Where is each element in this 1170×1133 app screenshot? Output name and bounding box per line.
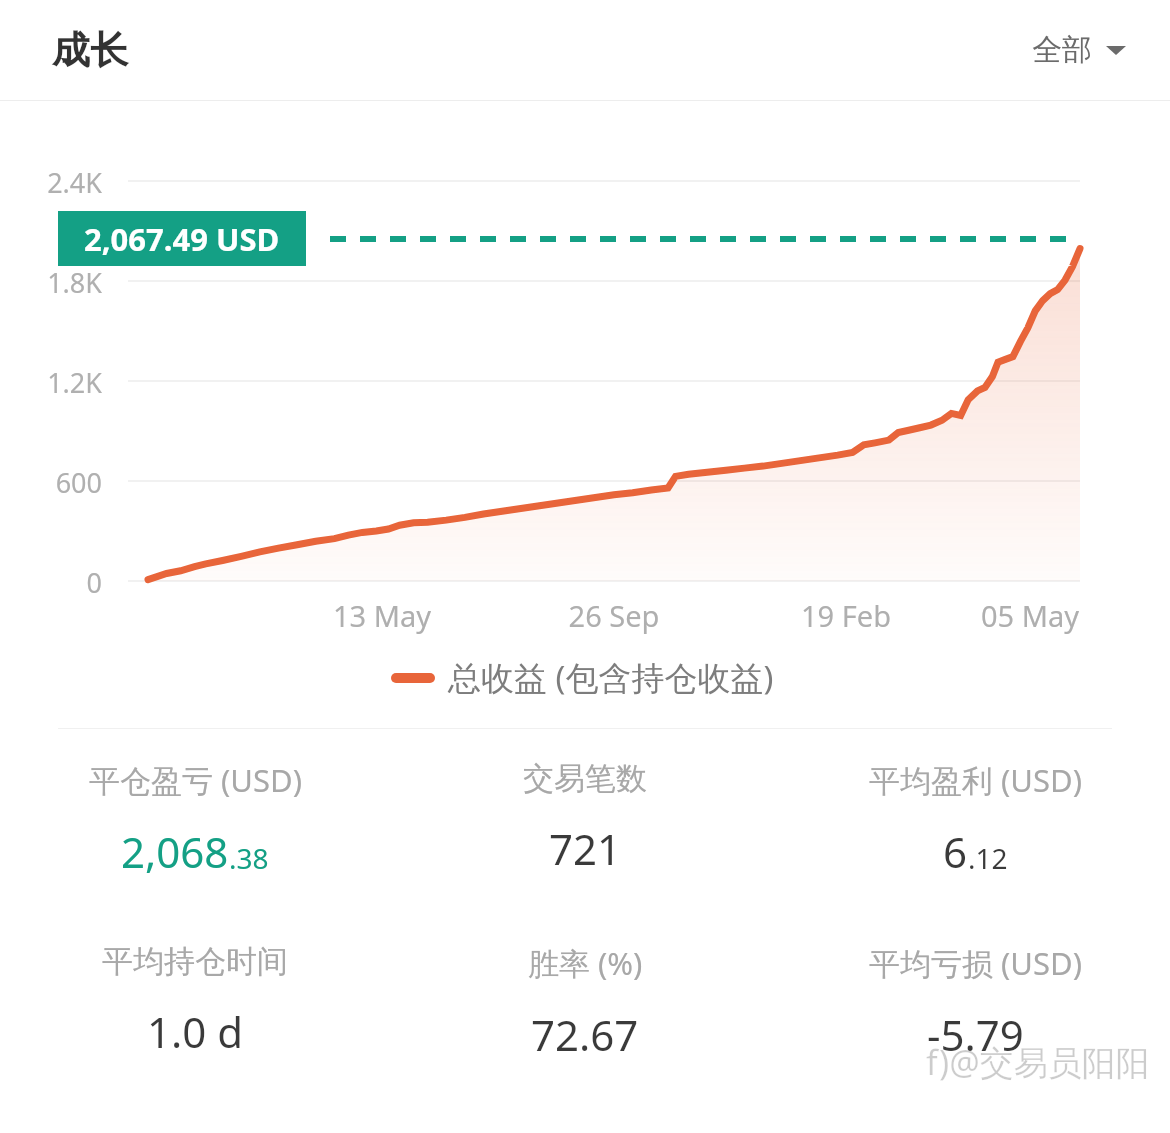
staticText: 成长 — [52, 26, 128, 74]
button[interactable]: 2,067.49 USD — [58, 211, 306, 266]
staticText: 1.0 d — [147, 1003, 244, 1060]
staticText: 72.67 — [531, 1006, 639, 1063]
staticText: 平均盈利 (USD) — [869, 759, 1082, 801]
staticText: .12 — [968, 839, 1008, 877]
button[interactable]: 平仓盈亏 (USD) — [0, 759, 390, 880]
staticText: 胜率 (%) — [528, 942, 643, 984]
staticText: .38 — [229, 839, 269, 877]
staticText: 19 Feb — [766, 596, 926, 635]
staticText: 平均持仓时间 — [102, 942, 288, 981]
staticText: 平均亏损 (USD) — [869, 942, 1082, 984]
staticText: 1.8K — [0, 264, 102, 301]
staticText: 交易笔数 — [523, 759, 647, 798]
button[interactable]: 交易笔数 — [390, 759, 780, 877]
staticText: 2.4K — [0, 164, 102, 201]
button[interactable]: 胜率 (%) — [390, 942, 780, 1063]
staticText: 0 — [0, 564, 102, 601]
staticText: 6 — [943, 823, 968, 880]
staticText: 2,068 — [121, 823, 229, 880]
staticText: 13 May — [302, 596, 462, 635]
staticText: 平仓盈亏 (USD) — [89, 759, 302, 801]
button[interactable]: 全部 — [1024, 23, 1134, 77]
staticText: 721 — [549, 820, 622, 877]
staticText: 全部 — [1032, 31, 1092, 69]
staticText: 600 — [0, 464, 102, 501]
button[interactable]: 总收益 (包含持仓收益) — [390, 649, 780, 706]
staticText: 1.2K — [0, 364, 102, 401]
staticText: 总收益 (包含持仓收益) — [448, 655, 774, 700]
staticText: 05 May — [950, 596, 1110, 635]
staticText: 26 Sep — [534, 596, 694, 635]
staticText: f)@交易员阳阳 — [926, 1039, 1150, 1085]
staticText: 2,067.49 USD — [84, 218, 280, 260]
button[interactable]: 平均亏损 (USD) — [780, 942, 1170, 1063]
button[interactable]: 平均持仓时间 — [0, 942, 390, 1060]
staticText: -5.79 — [927, 1006, 1024, 1063]
button[interactable]: 平均盈利 (USD) — [780, 759, 1170, 880]
